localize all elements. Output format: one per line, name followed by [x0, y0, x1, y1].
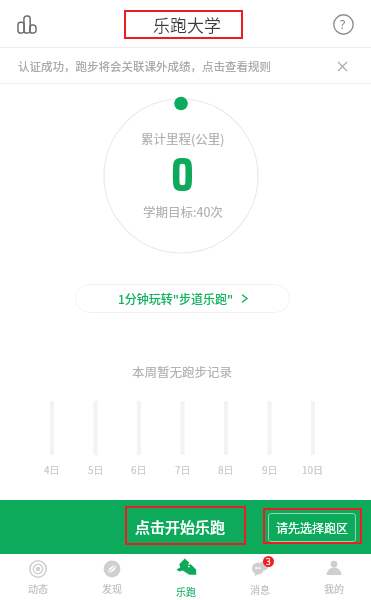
staticText: 5日	[88, 462, 104, 476]
staticText: 6日	[131, 462, 147, 476]
button[interactable]: 1分钟玩转"步道乐跑"	[75, 284, 290, 313]
staticText: ?	[340, 16, 346, 32]
staticText: 认证成功，跑步将会关联课外成绩，点击查看规则	[18, 58, 271, 75]
button[interactable]: 乐跑	[149, 554, 223, 600]
staticText: 8日	[218, 462, 234, 476]
button[interactable]: 3	[223, 554, 297, 600]
staticText: 我的	[324, 581, 344, 595]
button[interactable]: 点击开始乐跑	[131, 510, 230, 544]
button[interactable]: 动态	[0, 554, 75, 600]
staticText: 1分钟玩转"步道乐跑"	[118, 290, 234, 307]
staticText: 点击开始乐跑	[135, 516, 226, 538]
staticText: 请先选择跑区	[276, 519, 349, 536]
button[interactable]: Help	[327, 8, 359, 40]
staticText: 乐跑大学	[153, 12, 221, 37]
button[interactable]: 认证成功，跑步将会关联课外成绩，点击查看规则	[0, 48, 371, 84]
staticText: 4日	[44, 462, 60, 476]
staticText: 消息	[250, 582, 270, 596]
staticText: 9日	[262, 462, 278, 476]
button[interactable]: 我的	[297, 554, 371, 600]
staticText: 发现	[102, 581, 122, 595]
staticText: 3	[266, 556, 271, 567]
staticText: 累计里程(公里)	[141, 129, 225, 147]
staticText: 学期目标:40次	[143, 202, 223, 220]
button[interactable]: 发现	[75, 554, 149, 600]
staticText: 10日	[302, 462, 324, 476]
staticText: 乐跑	[176, 584, 196, 598]
staticText: 动态	[28, 581, 48, 595]
staticText: 7日	[175, 462, 191, 476]
button[interactable]: Close	[329, 53, 355, 79]
button[interactable]: 请先选择跑区	[268, 513, 356, 542]
button[interactable]: Statistics	[10, 7, 44, 41]
staticText: 本周暂无跑步记录	[132, 362, 233, 380]
staticText: 0	[171, 137, 194, 213]
